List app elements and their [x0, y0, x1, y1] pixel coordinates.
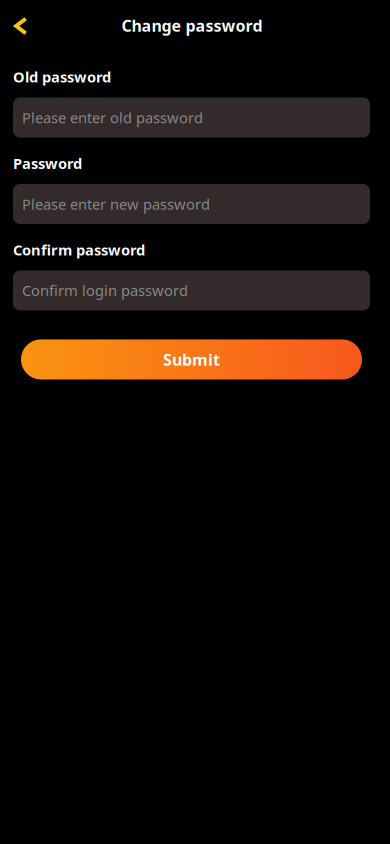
button[interactable]: Submit [21, 339, 362, 379]
staticText: Old password [13, 67, 111, 86]
staticText: Confirm password [13, 240, 145, 259]
button[interactable]: Back [0, 0, 54, 48]
button[interactable]: Please enter old password [13, 97, 370, 137]
button[interactable]: Confirm login password [13, 270, 370, 310]
staticText: Confirm login password [22, 280, 188, 300]
staticText: Change password [121, 15, 262, 36]
staticText: Please enter new password [22, 194, 210, 214]
staticText: Password [13, 153, 82, 173]
staticText: Submit [163, 349, 220, 370]
button[interactable]: Please enter new password [13, 184, 370, 224]
staticText: Please enter old password [22, 107, 203, 127]
